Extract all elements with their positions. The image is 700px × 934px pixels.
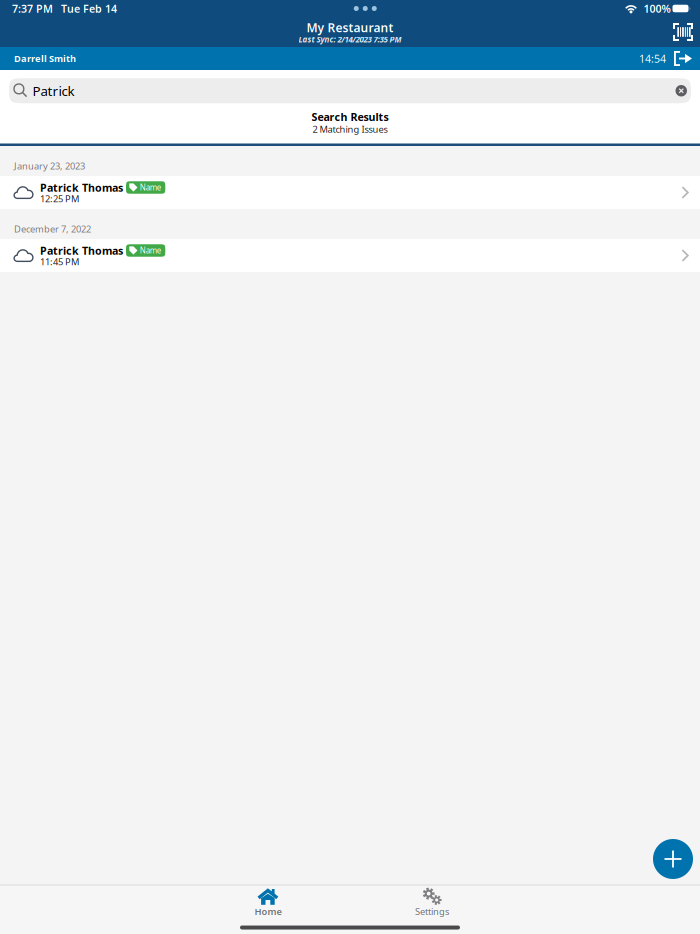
button[interactable]: Settings <box>372 886 492 918</box>
staticText: Settings <box>415 905 449 918</box>
staticText: My Restaurant <box>306 19 393 35</box>
staticText: Patrick Thomas <box>40 243 123 258</box>
staticText: January 23, 2023 <box>14 160 85 172</box>
button[interactable]: Patrick <box>9 78 691 103</box>
staticText: Darrell Smith <box>14 52 76 65</box>
staticText: 100% <box>643 1 670 16</box>
staticText: Name <box>140 245 162 256</box>
staticText: Search Results <box>311 110 388 124</box>
staticText: December 7, 2022 <box>14 223 91 235</box>
button[interactable]: Home <box>208 886 328 918</box>
button[interactable]: Sign out <box>666 47 693 70</box>
staticText: Patrick <box>32 82 74 100</box>
staticText: 11:45 PM <box>40 256 79 268</box>
staticText: 7:37 PM <box>12 1 53 16</box>
staticText: 12:25 PM <box>40 193 79 205</box>
staticText: Last Sync: 2/14/2023 7:35 PM <box>298 34 401 45</box>
staticText: 2 Matching Issues <box>312 123 387 135</box>
button[interactable]: Patrick Thomas <box>0 239 700 272</box>
staticText: Name <box>140 182 162 193</box>
staticText: Patrick Thomas <box>40 180 123 195</box>
staticText: Tue Feb 14 <box>61 1 117 16</box>
staticText: Home <box>254 905 281 918</box>
button[interactable]: Scan barcode <box>663 17 700 46</box>
button[interactable]: Patrick Thomas <box>0 176 700 209</box>
staticText: 14:54 <box>639 51 666 66</box>
button[interactable]: Add <box>653 839 693 879</box>
